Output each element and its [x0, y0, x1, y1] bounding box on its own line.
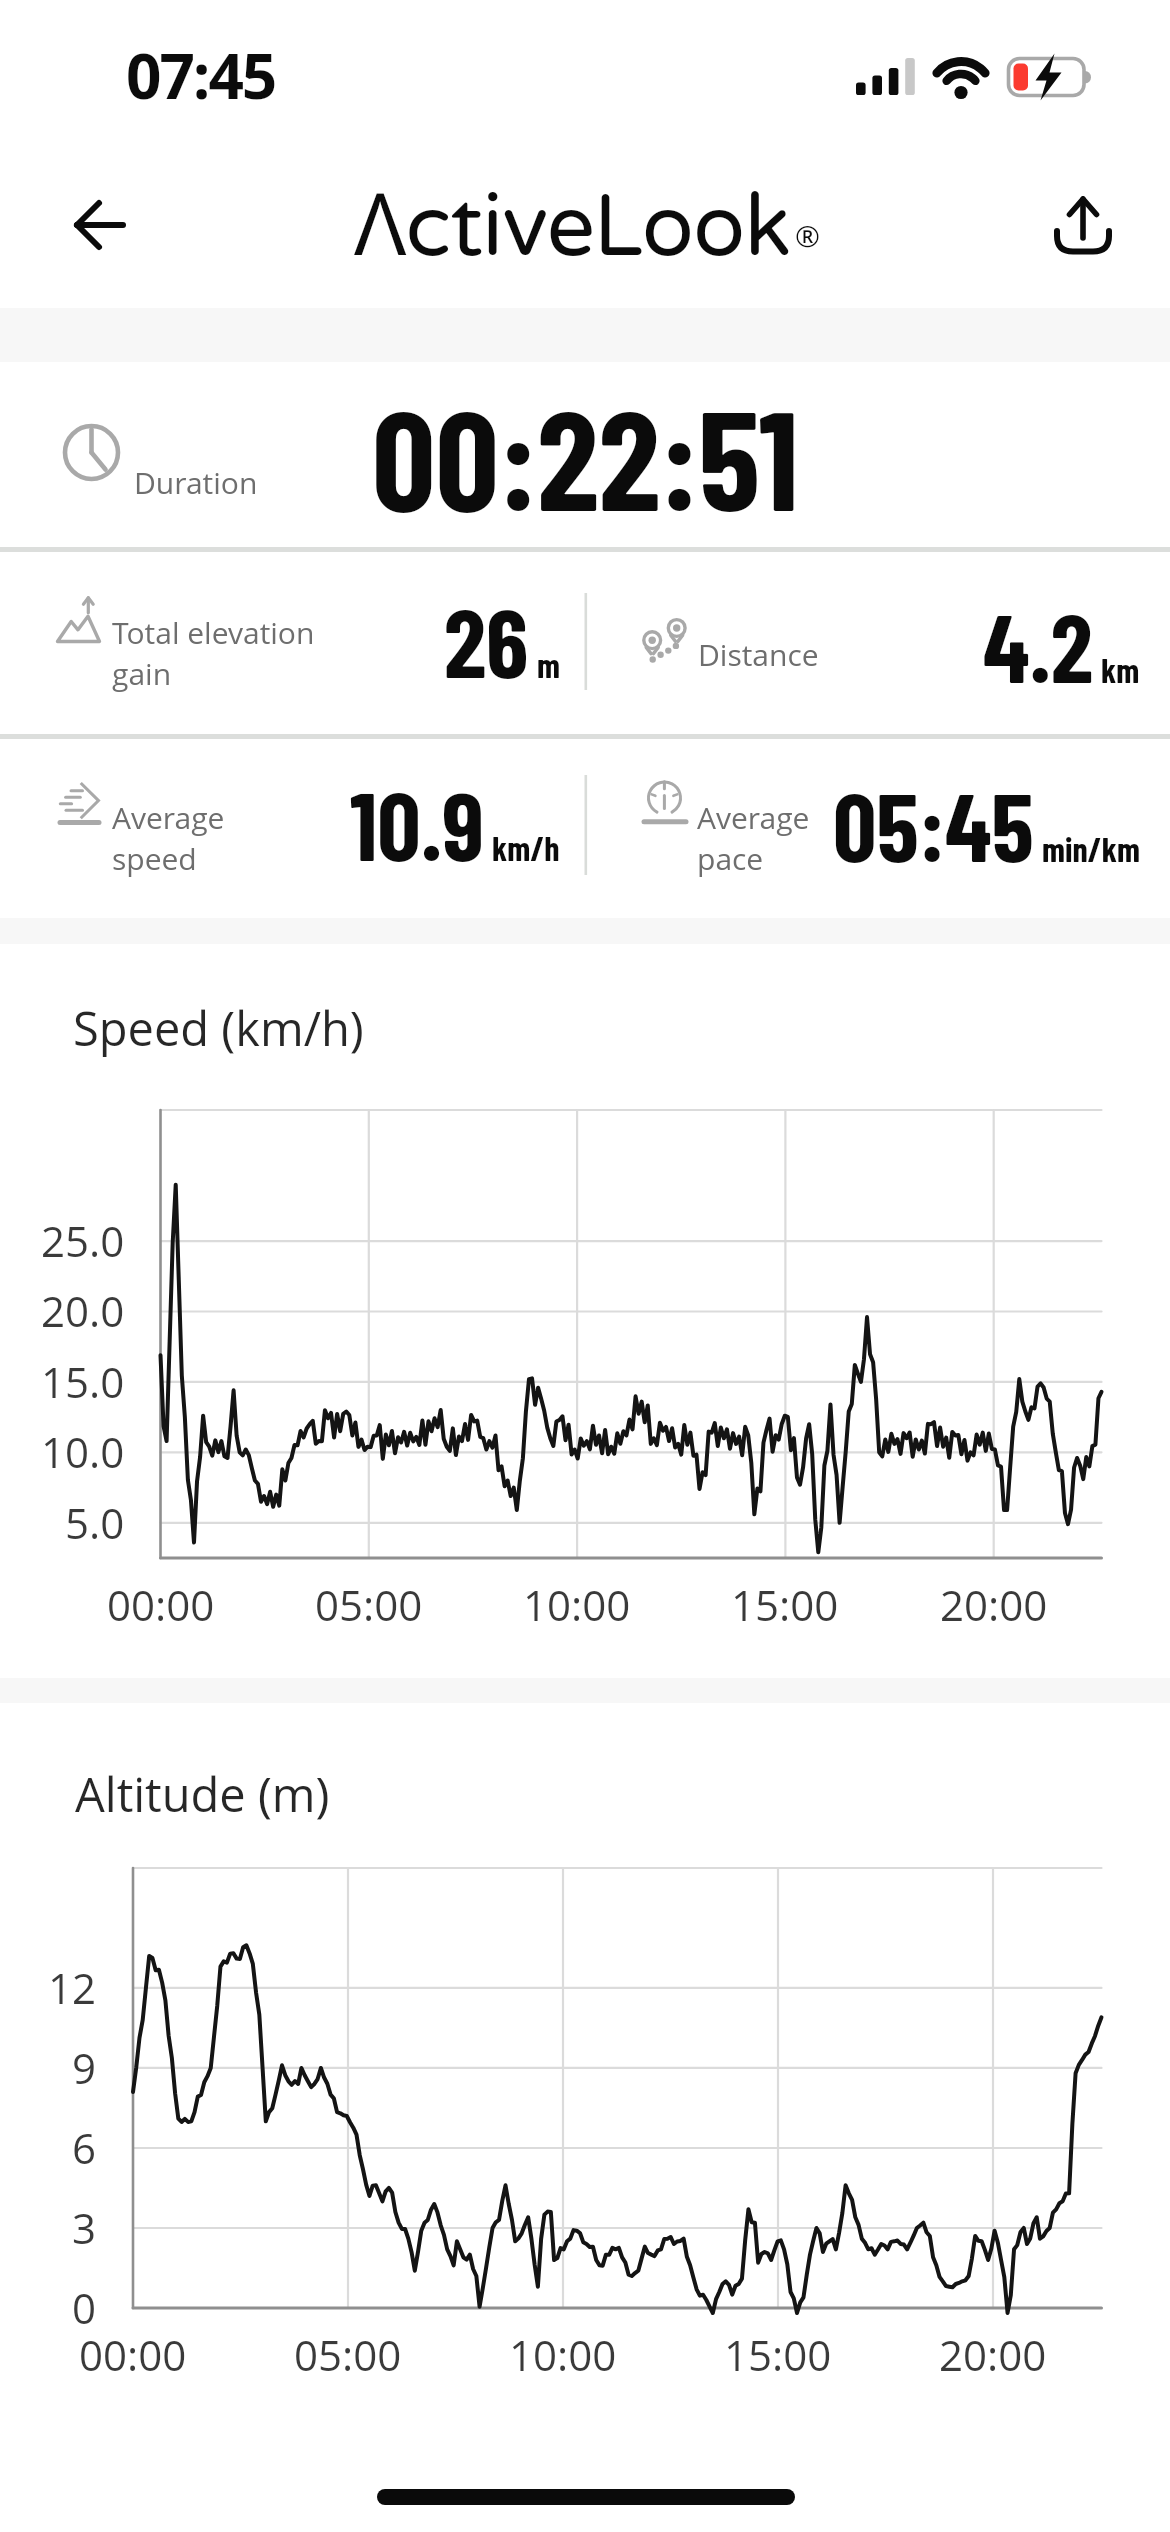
staticText: ® — [795, 215, 820, 256]
staticText: 3 — [72, 2199, 97, 2256]
staticText: 10:00 — [509, 2326, 617, 2383]
staticText: 26 — [444, 582, 529, 697]
staticText: 5.0 — [65, 1494, 125, 1551]
staticText: 25.0 — [41, 1212, 125, 1269]
staticText: Duration — [134, 462, 258, 503]
staticText: 12 — [48, 1959, 97, 2016]
staticText: km/h — [492, 827, 560, 868]
staticText: min/km — [1042, 828, 1140, 869]
staticText: 00:22:51 — [372, 371, 799, 539]
staticText: 10.0 — [41, 1423, 125, 1480]
staticText: 20:00 — [940, 1576, 1048, 1633]
button[interactable] — [1040, 180, 1132, 270]
staticText: m — [537, 644, 560, 685]
staticText: Average pace — [697, 797, 810, 879]
staticText: Distance — [698, 634, 819, 675]
staticText: 0 — [72, 2279, 97, 2336]
staticText: 9 — [72, 2039, 97, 2096]
staticText: 00:00 — [79, 2326, 187, 2383]
button[interactable] — [55, 183, 145, 269]
staticText: Altitude (m) — [75, 1762, 330, 1826]
staticText: Average speed — [112, 797, 225, 879]
staticText: 15:00 — [724, 2326, 832, 2383]
staticText: ΛctiveLook — [354, 163, 791, 280]
staticText: Speed (km/h) — [73, 996, 364, 1060]
staticText: 00:00 — [107, 1576, 215, 1633]
staticText: 05:00 — [294, 2326, 402, 2383]
staticText: 15.0 — [41, 1353, 125, 1410]
staticText: 05:45 — [833, 766, 1034, 881]
staticText: 20.0 — [41, 1282, 125, 1339]
staticText: 4.2 — [983, 587, 1093, 702]
staticText: 6 — [72, 2119, 97, 2176]
staticText: 07:45 — [126, 33, 276, 117]
staticText: 10:00 — [523, 1576, 631, 1633]
staticText: km — [1101, 649, 1140, 690]
staticText: 05:00 — [315, 1576, 423, 1633]
staticText: 20:00 — [939, 2326, 1047, 2383]
staticText: Total elevation gain — [112, 612, 315, 694]
staticText: 15:00 — [731, 1576, 839, 1633]
staticText: 10.9 — [350, 765, 484, 880]
